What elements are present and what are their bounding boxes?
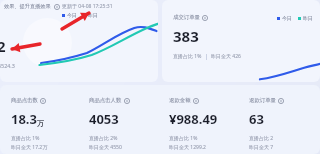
staticText: 商品点击人数	[89, 97, 122, 104]
staticText: 今日	[67, 12, 77, 18]
button[interactable]: 商品点击人数	[80, 85, 160, 154]
staticText: 今日	[282, 15, 292, 21]
staticText: 4053	[89, 110, 119, 128]
button[interactable]: 成交订单量	[162, 0, 320, 82]
staticText: 商品点击数	[11, 97, 38, 104]
button[interactable]: 退款金额	[160, 85, 240, 154]
staticText: 成交订单量	[173, 14, 200, 21]
staticText: 直播占比 1%	[173, 53, 202, 60]
staticText: 5524.3	[0, 62, 15, 69]
staticText: ¥988.49	[169, 110, 218, 128]
staticText: 63	[249, 110, 264, 128]
button[interactable]: 商品点击数	[0, 85, 80, 154]
staticText: 2	[0, 36, 6, 56]
button[interactable]: 效果、提升直播效果	[0, 0, 158, 82]
staticText: 直播占比 1%	[11, 135, 40, 142]
staticText: 昨日	[303, 15, 313, 21]
staticText: 383	[173, 26, 199, 46]
staticText: 更新于 04-08 17:25:31	[62, 3, 113, 10]
other: Annotation arrows	[0, 0, 320, 154]
staticText: 昨日全天 7	[249, 144, 274, 151]
staticText: 万	[37, 119, 44, 128]
staticText: 18.3	[11, 110, 37, 128]
staticText: 昨日全天 1299.2	[169, 144, 206, 151]
staticText: 昨日全天 426	[211, 53, 241, 60]
staticText: 直播占比 2	[249, 135, 274, 142]
button[interactable]: 退款订单量	[240, 85, 320, 154]
staticText: 昨日全天 17.2万	[11, 144, 48, 151]
staticText: 退款金额	[169, 97, 191, 104]
staticText: 昨日全天 4550	[89, 144, 122, 151]
staticText: 退款订单量	[249, 97, 276, 104]
staticText: 直播占比 2%	[89, 135, 118, 142]
staticText: 昨日	[88, 12, 98, 18]
staticText: 直播占比 1%	[169, 135, 198, 142]
staticText: 效果、提升直播效果	[4, 3, 51, 10]
